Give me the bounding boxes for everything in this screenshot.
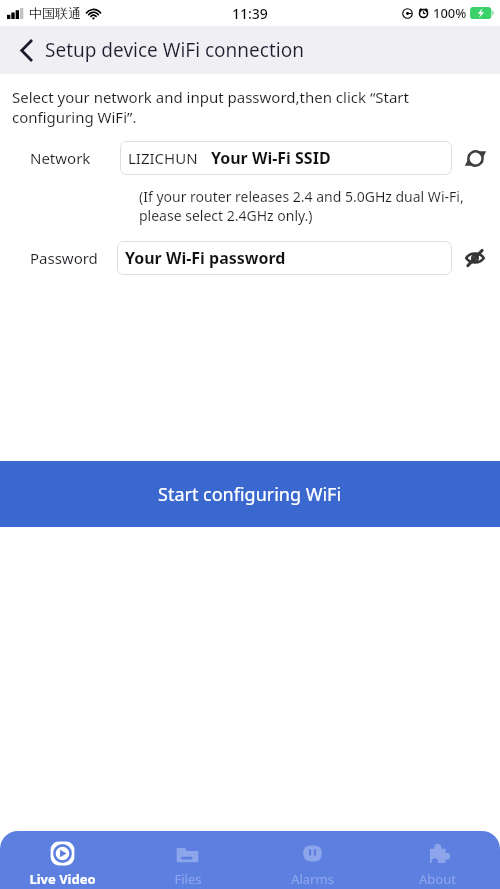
button[interactable]: LIZICHUN — [120, 141, 452, 175]
staticText: Your Wi-Fi password — [125, 247, 286, 269]
button[interactable]: Back — [10, 34, 42, 66]
staticText: Live Video — [29, 870, 96, 888]
staticText: Setup device WiFi connection — [45, 37, 304, 63]
button[interactable]: Files — [125, 831, 250, 889]
button[interactable]: Live Video — [0, 831, 125, 889]
button[interactable]: Show password — [460, 243, 490, 273]
staticText: Files — [174, 870, 202, 888]
staticText: LIZICHUN — [128, 148, 198, 168]
staticText: (If your router releases 2.4 and 5.0GHz … — [139, 187, 482, 225]
staticText: Network — [30, 148, 91, 168]
staticText: Your Wi-Fi SSID — [211, 147, 331, 169]
staticText: 100% — [433, 4, 467, 22]
button[interactable]: Start configuring WiFi — [0, 461, 500, 527]
staticText: 中国联通 — [29, 5, 81, 21]
staticText: 11:39 — [232, 4, 268, 23]
button[interactable]: About — [375, 831, 500, 889]
button[interactable]: Your Wi-Fi password — [117, 241, 452, 275]
staticText: Start configuring WiFi — [158, 482, 342, 507]
button[interactable]: Alarms — [250, 831, 375, 889]
button[interactable]: Refresh networks — [460, 143, 490, 173]
staticText: Select your network and input password,t… — [12, 87, 488, 127]
staticText: Alarms — [291, 870, 334, 888]
staticText: About — [419, 870, 456, 888]
staticText: Password — [30, 248, 98, 268]
